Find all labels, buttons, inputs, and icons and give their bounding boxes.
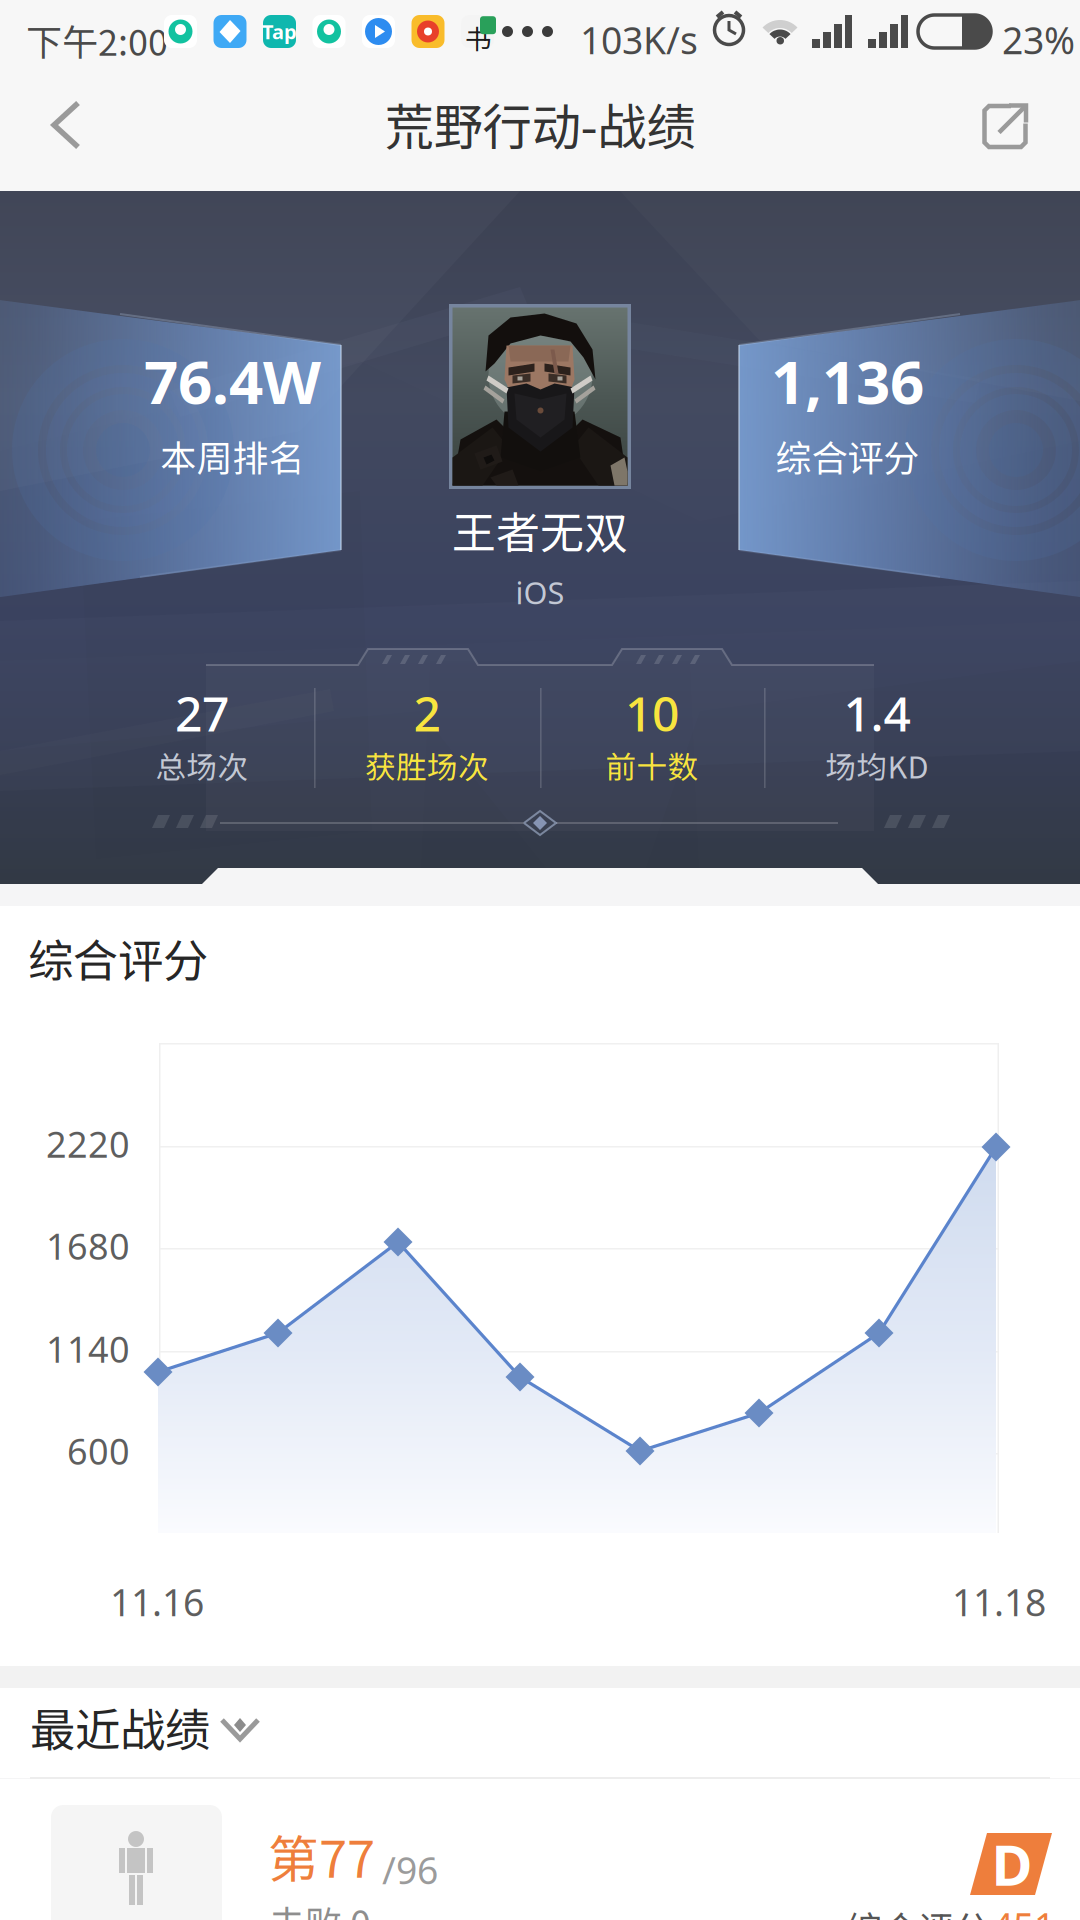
- staticText: 27: [175, 681, 229, 745]
- staticText: 1680: [46, 1222, 130, 1270]
- staticText: 1140: [46, 1325, 130, 1373]
- staticText: 1.4: [843, 681, 910, 745]
- staticText: 103K/s: [580, 15, 698, 65]
- staticText: 451: [992, 1901, 1055, 1920]
- staticText: 前十数: [605, 743, 698, 787]
- staticText: 击败 0: [268, 1895, 371, 1920]
- staticText: 11.16: [110, 1577, 204, 1627]
- staticText: iOS: [515, 572, 564, 613]
- staticText: 2: [413, 681, 440, 745]
- staticText: 本周排名: [160, 430, 304, 482]
- staticText: /96: [382, 1845, 438, 1895]
- button[interactable]: 最近战绩: [0, 1688, 1080, 1778]
- staticText: 76.4W: [144, 341, 321, 421]
- staticText: D: [991, 1827, 1032, 1901]
- staticText: 10: [625, 681, 679, 745]
- staticText: 23%: [1002, 15, 1075, 65]
- staticText: 王者无双: [452, 498, 628, 562]
- staticText: 11.18: [952, 1577, 1046, 1627]
- staticText: 总场次: [155, 743, 248, 787]
- staticText: 综合评分: [846, 1901, 990, 1920]
- staticText: 综合评分: [28, 925, 208, 991]
- staticText: 荒野行动-战绩: [384, 88, 695, 159]
- staticText: 获胜场次: [365, 743, 489, 787]
- staticText: 书: [465, 18, 492, 57]
- staticText: 下午2:00: [26, 14, 168, 66]
- staticText: 2220: [46, 1120, 130, 1168]
- staticText: 综合评分: [775, 430, 919, 482]
- staticText: Tap: [262, 18, 297, 45]
- staticText: 最近战绩: [30, 1694, 210, 1760]
- staticText: 场均KD: [825, 743, 928, 787]
- staticText: 1,136: [771, 341, 924, 421]
- button[interactable]: 第77: [0, 1779, 1080, 1920]
- button[interactable]: Back: [0, 62, 124, 191]
- button[interactable]: Share: [944, 62, 1066, 191]
- staticText: 600: [67, 1427, 130, 1475]
- staticText: 第77: [268, 1819, 375, 1892]
